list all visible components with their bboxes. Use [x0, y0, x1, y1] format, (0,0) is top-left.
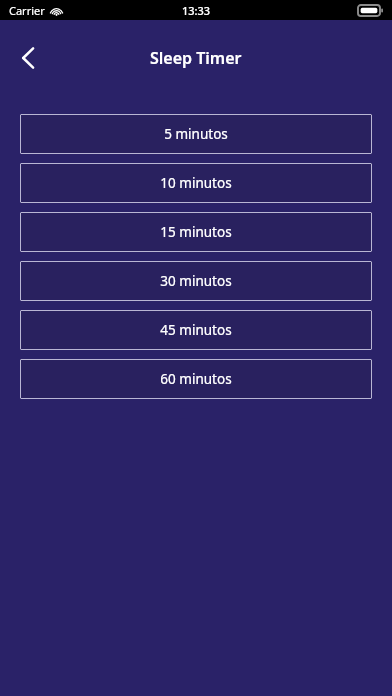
staticText: 5 minutos — [164, 125, 228, 143]
button[interactable]: Back — [6, 36, 50, 80]
staticText: 30 minutos — [160, 272, 232, 290]
staticText: 15 minutos — [160, 223, 232, 241]
staticText: 45 minutos — [160, 321, 232, 339]
button[interactable]: 45 minutos — [20, 310, 372, 350]
button[interactable]: 15 minutos — [20, 212, 372, 252]
staticText: 60 minutos — [160, 370, 232, 388]
button[interactable]: 30 minutos — [20, 261, 372, 301]
staticText: Sleep Timer — [150, 47, 242, 69]
staticText: 13:33 — [182, 3, 211, 18]
staticText: Carrier — [9, 3, 45, 18]
staticText: 10 minutos — [160, 174, 232, 192]
button[interactable]: 5 minutos — [20, 114, 372, 154]
button[interactable]: 10 minutos — [20, 163, 372, 203]
button[interactable]: 60 minutos — [20, 359, 372, 399]
